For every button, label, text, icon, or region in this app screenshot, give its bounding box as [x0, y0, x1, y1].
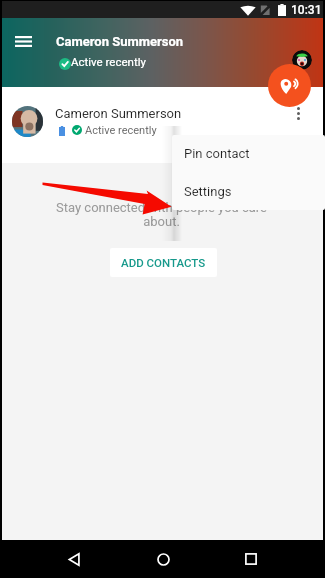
button[interactable]: ADD CONTACTS — [110, 248, 217, 277]
button[interactable] — [2, 87, 323, 163]
button[interactable]: Back — [57, 542, 91, 576]
staticText: Pin contact — [184, 146, 250, 161]
staticText: Active recently — [71, 55, 146, 68]
button[interactable]: Settings — [172, 172, 325, 210]
button[interactable]: Pin contact — [172, 135, 325, 172]
button[interactable]: Profile picture — [292, 50, 312, 70]
button[interactable]: Recent apps — [234, 542, 268, 576]
button[interactable]: Open navigation menu — [6, 24, 40, 58]
button[interactable]: More options — [283, 99, 311, 127]
staticText: Cameron Summerson — [55, 106, 182, 121]
staticText: Active recently — [85, 124, 157, 137]
button[interactable]: Share location — [268, 64, 311, 107]
button[interactable]: Home — [146, 542, 180, 576]
staticText: Settings — [184, 184, 232, 199]
staticText: ADD CONTACTS — [121, 256, 206, 269]
staticText: Stay connected with people you care abou… — [53, 200, 270, 229]
staticText: Cameron Summerson — [56, 34, 184, 49]
staticText: 10:31 — [291, 3, 322, 17]
